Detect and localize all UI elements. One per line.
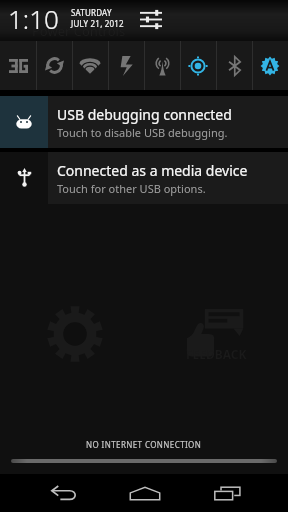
staticText: Power Controls bbox=[32, 22, 126, 40]
staticText: USB debugging connected bbox=[57, 105, 232, 124]
button[interactable]: Quick setting 0 bbox=[0, 41, 36, 90]
staticText: SATURDAY bbox=[71, 7, 112, 18]
staticText: Connected as a media device bbox=[57, 161, 248, 180]
button[interactable]: Quick setting 4 bbox=[144, 41, 180, 90]
button[interactable]: Connected as a media device bbox=[0, 152, 288, 204]
staticText: NO INTERNET CONNECTION bbox=[86, 439, 202, 450]
staticText: FEEDBACK bbox=[186, 346, 247, 362]
button[interactable]: Back bbox=[42, 474, 86, 512]
staticText: Touch for other USB options. bbox=[57, 181, 206, 196]
button[interactable]: Quick setting 6 bbox=[216, 41, 252, 90]
button[interactable]: Home bbox=[123, 474, 167, 512]
button[interactable]: USB debugging connected bbox=[0, 96, 288, 148]
button[interactable]: Recent apps bbox=[205, 474, 249, 512]
button[interactable]: Quick setting 5 bbox=[180, 41, 216, 90]
staticText: 1:10 bbox=[8, 1, 59, 36]
staticText: Touch to disable USB debugging. bbox=[57, 125, 228, 140]
button[interactable]: Quick setting 1 bbox=[36, 41, 72, 90]
button[interactable]: Settings bbox=[136, 4, 166, 34]
button[interactable]: Quick setting 3 bbox=[108, 41, 144, 90]
button[interactable]: Quick setting 7 bbox=[252, 41, 288, 90]
staticText: JULY 21, 2012 bbox=[71, 18, 124, 29]
button[interactable]: Quick setting 2 bbox=[72, 41, 108, 90]
